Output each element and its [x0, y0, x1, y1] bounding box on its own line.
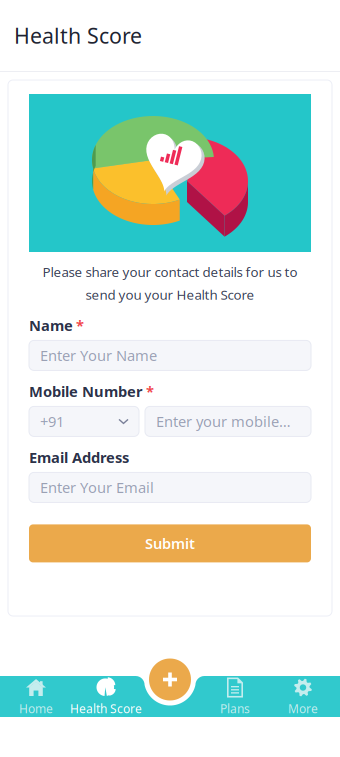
- button[interactable]: More: [264, 676, 340, 717]
- button[interactable]: Health Score: [67, 676, 145, 717]
- staticText: send you your Health Score: [85, 286, 254, 303]
- staticText: Please share your contact details for us…: [42, 263, 297, 281]
- staticText: +91: [40, 412, 64, 431]
- staticText: Plans: [220, 700, 250, 716]
- button[interactable]: Plans: [196, 676, 274, 717]
- staticText: Home: [19, 700, 53, 716]
- staticText: Enter Your Name: [40, 346, 157, 365]
- staticText: Email Address: [29, 448, 129, 467]
- staticText: Health Score: [14, 21, 142, 50]
- button[interactable]: Home: [0, 676, 75, 717]
- staticText: *: [146, 382, 154, 401]
- staticText: Health Score: [70, 700, 142, 716]
- staticText: Enter Your Email: [40, 478, 154, 497]
- button[interactable]: Submit: [29, 524, 311, 562]
- staticText: Enter your mobile number: [156, 412, 292, 431]
- button[interactable]: Add: [145, 654, 195, 704]
- staticText: *: [76, 316, 84, 335]
- staticText: Mobile Number: [29, 382, 143, 401]
- staticText: Name: [29, 316, 73, 335]
- staticText: More: [288, 700, 318, 716]
- staticText: Submit: [145, 534, 195, 553]
